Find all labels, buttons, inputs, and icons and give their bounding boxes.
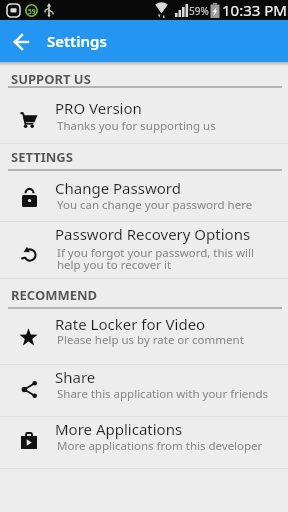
staticText: SETTINGS bbox=[11, 148, 73, 166]
staticText: Thanks you for supporting us bbox=[57, 118, 216, 134]
staticText: Share this application with your friends bbox=[57, 386, 269, 402]
staticText: Password Recovery Options bbox=[55, 224, 251, 244]
staticText: Settings bbox=[47, 31, 107, 51]
staticText: Change Password bbox=[55, 178, 181, 198]
staticText: 59% bbox=[189, 4, 209, 18]
staticText: More applications from this developer bbox=[57, 438, 263, 454]
staticText: PRO Version bbox=[55, 98, 142, 118]
staticText: SUPPORT US bbox=[11, 70, 91, 88]
staticText: More Applications bbox=[55, 419, 183, 439]
staticText: You can change your password here bbox=[57, 197, 253, 213]
staticText: help you to recover it bbox=[57, 257, 172, 273]
staticText: If you forgot your password, this will bbox=[57, 245, 255, 261]
staticText: 59 bbox=[28, 7, 36, 16]
staticText: Share bbox=[55, 367, 96, 387]
staticText: Rate Locker for Video bbox=[55, 314, 206, 334]
staticText: 10:33 PM bbox=[222, 0, 287, 20]
staticText: Please help us by rate or comment bbox=[57, 332, 244, 348]
staticText: RECOMMEND bbox=[11, 286, 98, 304]
